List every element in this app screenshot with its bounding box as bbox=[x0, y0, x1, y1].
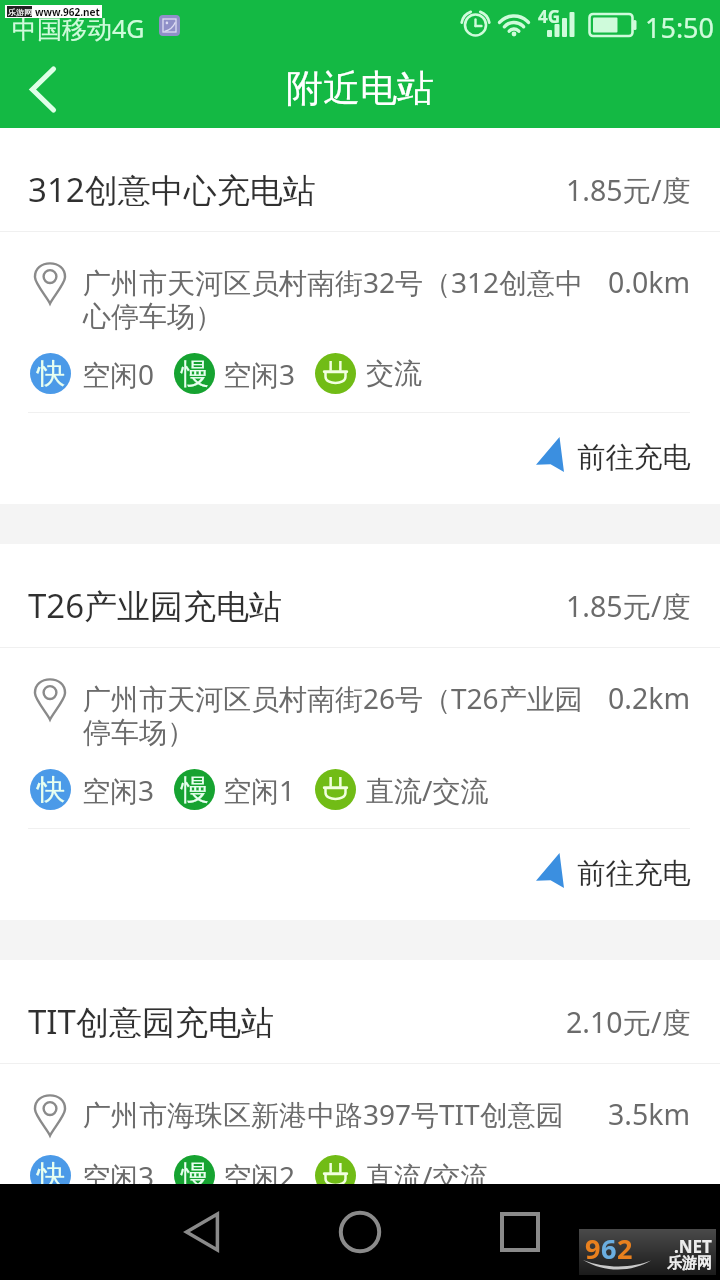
staticText: 1.85元/度 bbox=[566, 171, 691, 210]
staticText: 4G bbox=[538, 5, 561, 28]
button[interactable]: Home bbox=[330, 1202, 390, 1262]
staticText: 直流/交流 bbox=[366, 771, 489, 809]
button[interactable]: 前往充电 bbox=[0, 1215, 720, 1280]
staticText: 附近电站 bbox=[286, 65, 434, 112]
staticText: 交流 bbox=[366, 356, 422, 391]
staticText: 广州市海珠区新港中路397号TIT创意园 bbox=[83, 1095, 603, 1133]
staticText: T26产业园充电站 bbox=[28, 583, 283, 628]
button[interactable]: 前往充电 bbox=[0, 829, 720, 920]
staticText: 乐游网 bbox=[667, 1254, 712, 1273]
button[interactable]: T26产业园充电站 bbox=[0, 544, 720, 920]
staticText: 空闲3 bbox=[82, 771, 155, 809]
staticText: 前往充电 bbox=[577, 440, 691, 476]
staticText: 空闲3 bbox=[82, 1157, 155, 1195]
staticText: 乐游网 bbox=[8, 7, 32, 17]
staticText: 中国移动4G bbox=[12, 11, 145, 45]
staticText: 慢 bbox=[181, 356, 209, 391]
staticText: 空闲2 bbox=[223, 1157, 296, 1195]
staticText: 空闲0 bbox=[82, 355, 155, 393]
staticText: 2 bbox=[617, 1230, 633, 1267]
staticText: 6 bbox=[601, 1230, 617, 1267]
staticText: 9 bbox=[585, 1230, 601, 1267]
staticText: 广州市天河区员村南街32号（312创意中心停车场） bbox=[83, 263, 603, 334]
staticText: 空闲3 bbox=[223, 355, 296, 393]
button[interactable]: Back bbox=[170, 1202, 230, 1262]
staticText: TIT创意园充电站 bbox=[28, 999, 274, 1044]
staticText: 15:50 bbox=[645, 9, 715, 46]
staticText: 快 bbox=[37, 772, 65, 807]
button[interactable]: TIT创意园充电站 bbox=[0, 960, 720, 1280]
staticText: 直流/交流 bbox=[366, 1157, 489, 1195]
staticText: 2.10元/度 bbox=[566, 1003, 691, 1042]
staticText: 空闲1 bbox=[223, 771, 296, 809]
button[interactable]: 312创意中心充电站 bbox=[0, 128, 720, 504]
staticText: .NET bbox=[674, 1235, 712, 1258]
button[interactable]: Back bbox=[8, 52, 78, 124]
staticText: 广州市天河区员村南街26号（T26产业园停车场） bbox=[83, 679, 603, 750]
staticText: 前往充电 bbox=[577, 856, 691, 892]
button[interactable]: Recents bbox=[490, 1202, 550, 1262]
staticText: 0.0km bbox=[608, 263, 691, 302]
staticText: 快 bbox=[37, 356, 65, 391]
button[interactable]: 前往充电 bbox=[0, 413, 720, 504]
staticText: 快 bbox=[37, 1158, 65, 1193]
staticText: 慢 bbox=[181, 772, 209, 807]
staticText: www.962.net bbox=[35, 5, 100, 18]
staticText: 312创意中心充电站 bbox=[28, 167, 316, 212]
staticText: 1.85元/度 bbox=[566, 587, 691, 626]
staticText: 慢 bbox=[181, 1158, 209, 1193]
staticText: 前往充电 bbox=[577, 1242, 691, 1278]
staticText: 3.5km bbox=[608, 1095, 691, 1134]
staticText: 0.2km bbox=[608, 679, 691, 718]
